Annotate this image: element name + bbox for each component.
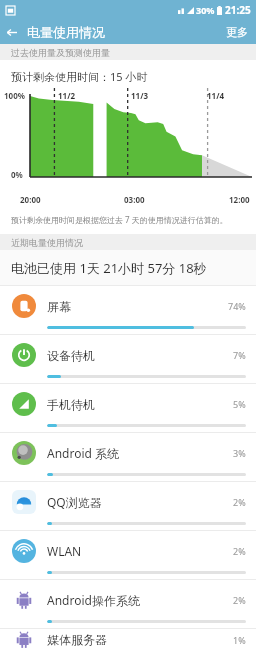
staticText: 21:25	[225, 3, 251, 17]
staticText: 更多	[226, 25, 248, 39]
button[interactable]: QQ浏览器	[0, 482, 256, 531]
staticText: 74%	[228, 300, 246, 312]
button[interactable]: Back	[0, 21, 22, 43]
staticText: 电量使用情况	[27, 24, 105, 40]
staticText: 电池已使用 1天 21小时 57分 18秒	[11, 259, 207, 277]
staticText: 12:00	[229, 194, 250, 205]
staticText: Android操作系统	[47, 592, 233, 608]
staticText: 手机待机	[47, 397, 233, 412]
staticText: 3%	[233, 447, 246, 459]
staticText: 11/3	[131, 90, 149, 101]
button[interactable]: 屏幕	[0, 286, 256, 335]
staticText: WLAN	[47, 543, 233, 559]
staticText: 1%	[233, 634, 246, 646]
staticText: 预计剩余使用时间是根据您过去 7 天的使用情况进行估算的。	[11, 214, 228, 225]
staticText: 过去使用量及预测使用量	[11, 47, 110, 58]
staticText: 2%	[233, 496, 246, 508]
staticText: 30%	[196, 4, 215, 16]
button[interactable]: 更多	[218, 25, 256, 39]
staticText: QQ浏览器	[47, 494, 233, 510]
button[interactable]: 设备待机	[0, 335, 256, 384]
staticText: Android 系统	[47, 445, 233, 461]
button[interactable]: WLAN	[0, 531, 256, 580]
staticText: 媒体服务器	[47, 632, 233, 647]
button[interactable]: Android操作系统	[0, 580, 256, 629]
staticText: 7%	[233, 349, 246, 361]
staticText: 5%	[233, 398, 246, 410]
staticText: 100%	[4, 90, 25, 101]
button[interactable]: 媒体服务器	[0, 629, 256, 650]
staticText: 设备待机	[47, 348, 233, 363]
staticText: 11/4	[207, 90, 225, 101]
staticText: 2%	[233, 594, 246, 606]
staticText: 03:00	[124, 194, 145, 205]
staticText: 0%	[11, 169, 23, 180]
staticText: 20:00	[20, 194, 41, 205]
staticText: 屏幕	[47, 299, 228, 314]
button[interactable]: Android 系统	[0, 433, 256, 482]
staticText: 11/2	[58, 90, 76, 101]
staticText: 近期电量使用情况	[11, 237, 83, 248]
staticText: 预计剩余使用时间：15 小时	[11, 69, 148, 84]
button[interactable]: 手机待机	[0, 384, 256, 433]
staticText: 2%	[233, 545, 246, 557]
